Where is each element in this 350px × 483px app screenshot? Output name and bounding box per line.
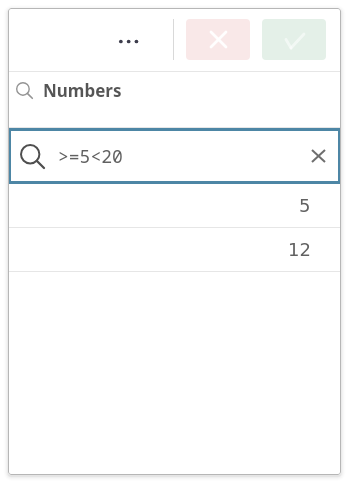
staticText: >=5<20 <box>58 144 123 169</box>
button[interactable]: 5 <box>8 184 341 227</box>
button[interactable]: Numbers <box>8 72 341 109</box>
button[interactable]: More options <box>111 20 147 60</box>
button[interactable]: 12 <box>8 228 341 271</box>
staticText: Numbers <box>43 79 122 102</box>
button[interactable]: Clear <box>303 141 333 171</box>
button[interactable]: Cancel <box>186 19 250 60</box>
staticText: 5 <box>299 195 311 216</box>
button[interactable]: >=5<20 <box>8 128 341 184</box>
staticText: 12 <box>288 239 311 260</box>
